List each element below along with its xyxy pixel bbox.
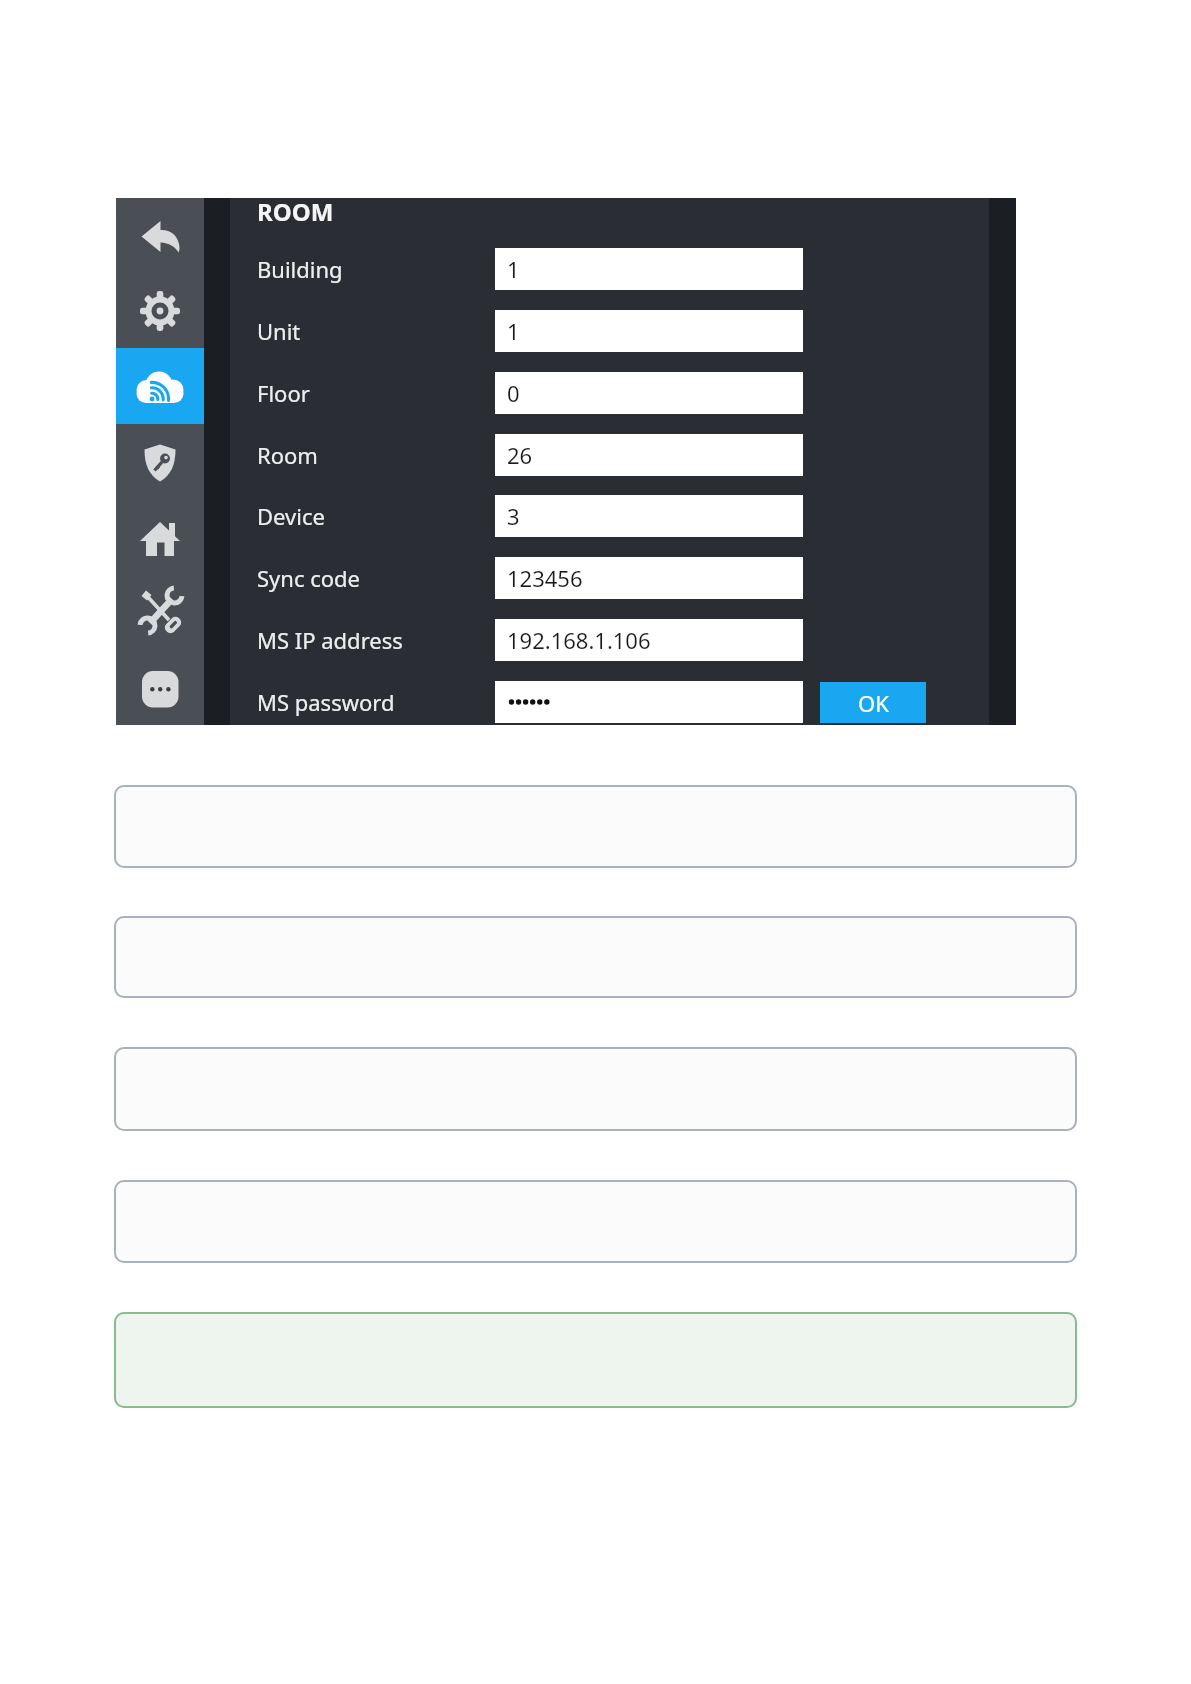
- button[interactable]: [132, 511, 188, 567]
- button[interactable]: [114, 1312, 1077, 1408]
- button[interactable]: [132, 584, 188, 640]
- button[interactable]: [495, 681, 803, 723]
- button[interactable]: [132, 283, 188, 339]
- staticText: Sync code: [257, 563, 360, 593]
- button[interactable]: 123456: [495, 557, 803, 599]
- button[interactable]: 0: [495, 372, 803, 414]
- button[interactable]: 1: [495, 248, 803, 290]
- staticText: MS IP address: [257, 625, 403, 655]
- button[interactable]: [132, 209, 188, 265]
- staticText: 0: [507, 378, 520, 408]
- staticText: MS password: [257, 687, 395, 717]
- button[interactable]: [132, 435, 188, 491]
- staticText: Unit: [257, 316, 301, 346]
- staticText: Room: [257, 440, 318, 470]
- staticText: 192.168.1.106: [507, 625, 651, 655]
- staticText: OK: [858, 688, 889, 718]
- button[interactable]: 1: [495, 310, 803, 352]
- button[interactable]: [114, 916, 1077, 998]
- staticText: 1: [507, 254, 520, 284]
- button[interactable]: [114, 785, 1077, 868]
- staticText: 3: [507, 501, 520, 531]
- button[interactable]: 192.168.1.106: [495, 619, 803, 661]
- button[interactable]: 3: [495, 495, 803, 537]
- staticText: Floor: [257, 378, 310, 408]
- button[interactable]: OK: [820, 682, 926, 723]
- button[interactable]: [114, 1047, 1077, 1131]
- button[interactable]: 26: [495, 434, 803, 476]
- staticText: 123456: [507, 563, 583, 593]
- button[interactable]: [132, 359, 188, 415]
- staticText: 1: [507, 316, 520, 346]
- staticText: ROOM: [257, 195, 334, 223]
- staticText: Device: [257, 501, 325, 531]
- button[interactable]: [132, 661, 188, 717]
- button[interactable]: [114, 1180, 1077, 1263]
- staticText: 26: [507, 440, 533, 470]
- staticText: Building: [257, 254, 343, 284]
